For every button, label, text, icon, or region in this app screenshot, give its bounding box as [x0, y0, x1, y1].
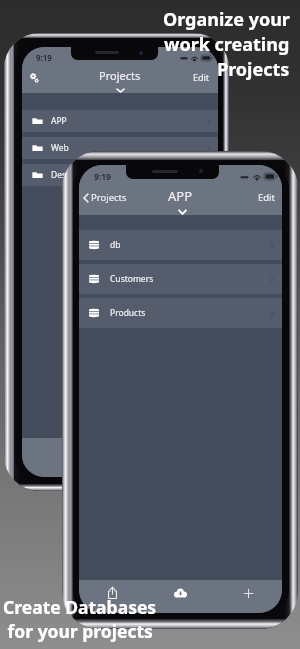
staticText: Create Databases	[3, 595, 157, 619]
button[interactable]: db	[79, 230, 282, 260]
staticText: Desktop	[51, 169, 85, 181]
button[interactable]: Products	[79, 298, 282, 328]
button[interactable]: Customers	[79, 264, 282, 294]
staticText: Projects	[217, 57, 290, 82]
staticText: 9:19	[36, 52, 52, 63]
button[interactable]: Share	[79, 580, 146, 606]
staticText: Projects	[99, 68, 141, 83]
button[interactable]: Add	[214, 580, 282, 606]
staticText: Customers	[110, 273, 154, 285]
button[interactable]: Web	[22, 137, 218, 159]
button[interactable]: Desktop	[22, 164, 218, 186]
staticText: for your projects	[3, 619, 153, 643]
button[interactable]: Edit	[258, 191, 276, 204]
button[interactable]: Edit	[193, 71, 210, 83]
staticText: Products	[110, 307, 146, 319]
staticText: Web	[51, 142, 69, 154]
button[interactable]: Settings	[30, 73, 39, 83]
staticText: APP	[168, 187, 193, 205]
button[interactable]: APP	[22, 110, 218, 132]
button[interactable]: Projects	[83, 191, 127, 204]
staticText: db	[110, 239, 121, 251]
staticText: Projects	[91, 191, 127, 204]
button[interactable]: Download	[146, 580, 214, 606]
staticText: work creating	[164, 32, 290, 57]
staticText: Organize your	[163, 7, 290, 32]
staticText: 9:19	[94, 171, 111, 183]
staticText: APP	[51, 115, 67, 127]
